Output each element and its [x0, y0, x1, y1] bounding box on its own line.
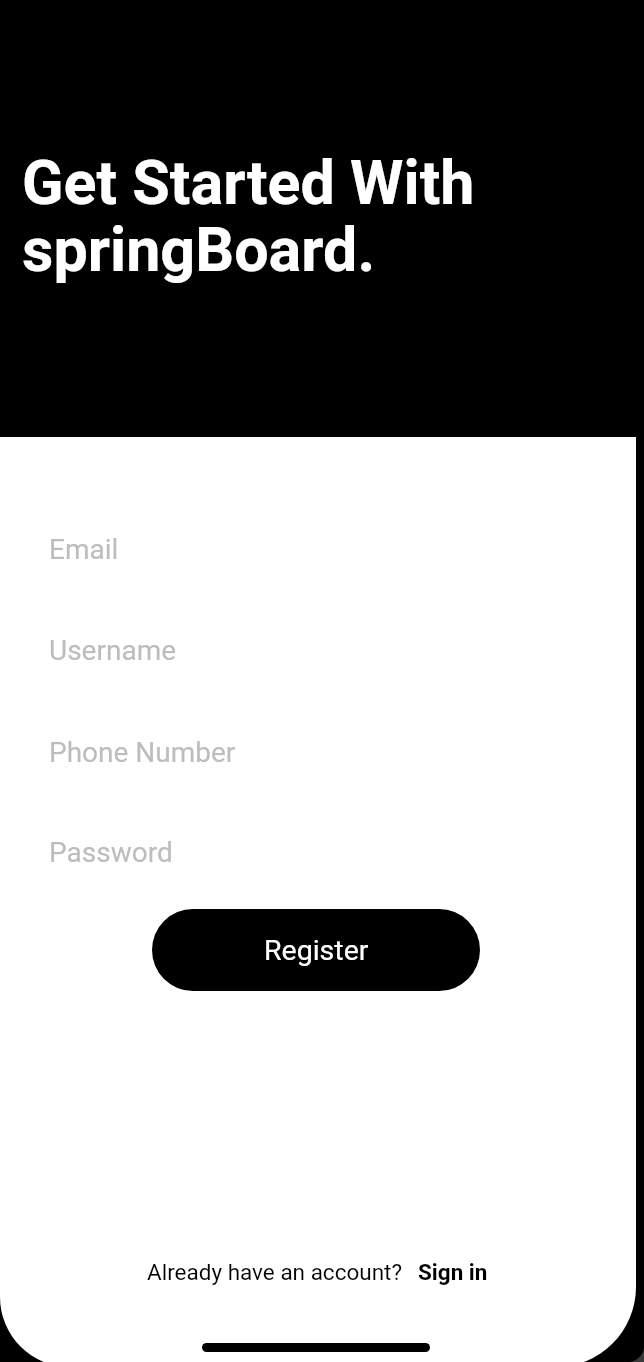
staticText: Phone Number — [49, 736, 236, 769]
staticText: Email — [49, 533, 119, 566]
staticText: Password — [49, 836, 173, 869]
staticText: Sign in — [418, 1259, 488, 1285]
button[interactable]: Phone Number — [49, 708, 593, 796]
button[interactable]: Register — [152, 909, 480, 991]
staticText: Username — [49, 634, 177, 667]
button[interactable]: Password — [49, 808, 593, 896]
button[interactable]: Username — [49, 606, 593, 694]
button[interactable]: Email — [49, 505, 593, 593]
button[interactable]: Sign in — [416, 1255, 490, 1289]
staticText: Already have an account? — [147, 1259, 403, 1285]
staticText: Register — [264, 934, 369, 967]
staticText: Get Started With springBoard. — [22, 147, 475, 286]
other: Home indicator — [202, 1343, 430, 1352]
